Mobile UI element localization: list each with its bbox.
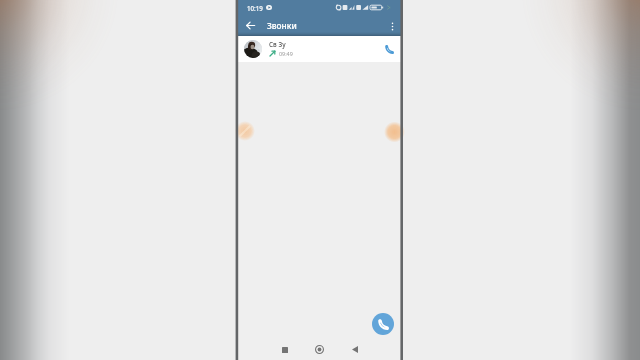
staticText: 10:19	[247, 4, 263, 12]
button[interactable]: Recent apps	[274, 339, 295, 360]
button[interactable]: Св Зу	[238, 36, 401, 62]
button[interactable]: Call back	[381, 41, 397, 57]
button[interactable]: Home	[309, 339, 330, 360]
button[interactable]: Back	[242, 17, 259, 34]
staticText: Св Зу	[269, 40, 286, 49]
staticText: Звонки	[267, 20, 297, 31]
button[interactable]: Back	[344, 339, 365, 360]
staticText: 09:49	[279, 50, 293, 57]
button[interactable]: More options	[384, 18, 400, 34]
button[interactable]: New call	[372, 313, 394, 335]
